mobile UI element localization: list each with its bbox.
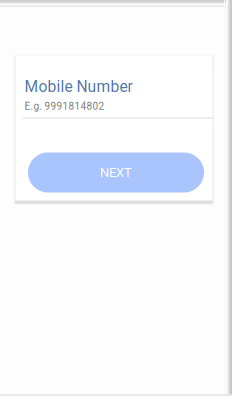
staticText: Mobile Number (24, 77, 132, 96)
staticText: NEXT (100, 165, 132, 180)
button[interactable]: Mobile Number (23, 74, 213, 126)
button[interactable]: NEXT (28, 152, 204, 192)
staticText: E.g. 9991814802 (24, 100, 104, 112)
